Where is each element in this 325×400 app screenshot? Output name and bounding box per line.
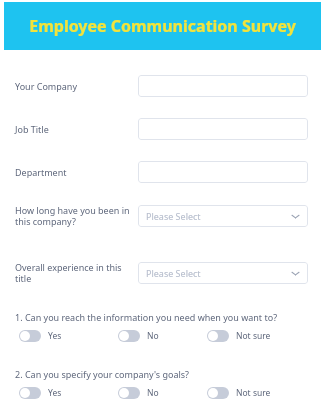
staticText: How long have you been in this company? <box>15 204 130 228</box>
button[interactable]: Overall experience in this title <box>138 262 308 284</box>
button[interactable]: Your Company <box>138 75 308 97</box>
staticText: Yes <box>48 330 62 342</box>
staticText: 2. Can you specify your company's goals? <box>15 368 189 380</box>
button[interactable]: Toggle No <box>118 330 140 342</box>
button[interactable]: Toggle Yes <box>19 387 41 399</box>
staticText: Department <box>15 166 67 178</box>
staticText: No <box>147 330 159 342</box>
staticText: Please Select <box>146 210 201 222</box>
staticText: Your Company <box>15 80 77 92</box>
button[interactable]: Department <box>138 161 308 183</box>
button[interactable]: Toggle Not sure <box>207 330 229 342</box>
button[interactable]: Toggle Yes <box>19 330 41 342</box>
staticText: Please Select <box>146 267 201 279</box>
button[interactable]: Toggle Not sure <box>207 387 229 399</box>
staticText: Overall experience in this title <box>15 261 138 285</box>
staticText: Job Title <box>15 123 49 135</box>
staticText: 1. Can you reach the information you nee… <box>15 311 278 323</box>
staticText: No <box>147 387 159 399</box>
button[interactable]: How long have you been in this company? <box>138 205 308 227</box>
staticText: Not sure <box>236 387 271 399</box>
staticText: Yes <box>48 387 62 399</box>
button[interactable]: Job Title <box>138 118 308 140</box>
staticText: Employee Communication Survey <box>29 15 296 37</box>
staticText: Not sure <box>236 330 271 342</box>
button[interactable]: Toggle No <box>118 387 140 399</box>
